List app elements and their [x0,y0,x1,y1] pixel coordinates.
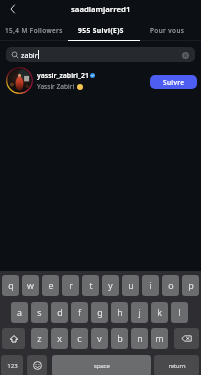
button[interactable]: return [154,355,199,375]
button[interactable]: k [151,302,168,323]
staticText: m [155,332,164,345]
button[interactable]: h [111,302,128,323]
staticText: o [168,279,174,292]
button[interactable]: y [102,275,119,296]
staticText: Yassir Zabiri [37,82,75,91]
staticText: k [157,306,162,319]
staticText: h [117,306,123,319]
staticText: q [8,279,14,292]
staticText: f [78,306,81,319]
staticText: x [57,332,62,345]
staticText: t [89,279,93,292]
staticText: d [57,306,63,319]
staticText: 15,4 M Followers [5,26,63,35]
staticText: space [94,362,110,370]
staticText: Suivre [163,78,185,87]
button[interactable]: Shift [2,328,25,349]
button[interactable]: yassir_zabiri_21 [0,66,201,95]
staticText: j [138,306,141,319]
staticText: w [27,279,34,292]
button[interactable]: Backspace [174,328,199,349]
staticText: l [178,306,181,319]
button[interactable]: b [111,328,128,349]
button[interactable]: d [51,302,68,323]
button[interactable]: i [142,275,159,296]
button[interactable]: r [62,275,79,296]
button[interactable]: space [52,355,151,375]
button[interactable]: f [71,302,88,323]
button[interactable]: m [151,328,168,349]
button[interactable]: c [71,328,88,349]
staticText: zabir [21,50,38,60]
staticText: p [188,279,194,292]
staticText: z [37,332,42,345]
button[interactable]: l [171,302,188,323]
button[interactable]: Pour vous [134,21,201,40]
button[interactable]: 123 [1,355,23,375]
staticText: b [117,332,123,345]
button[interactable]: zabir [6,47,195,62]
staticText: i [149,279,152,292]
button[interactable]: n [131,328,148,349]
button[interactable]: Clear search [180,50,190,60]
button[interactable]: t [82,275,99,296]
button[interactable]: w [22,275,39,296]
button[interactable]: z [31,328,48,349]
button[interactable]: o [162,275,179,296]
staticText: c [77,332,82,345]
staticText: 123 [7,362,18,370]
button[interactable]: s [31,302,48,323]
button[interactable]: u [122,275,139,296]
button[interactable]: 955 Suivi(E)S [67,21,134,40]
staticText: y [108,279,113,292]
button[interactable]: Emoji [27,355,47,375]
button[interactable]: e [42,275,59,296]
button[interactable]: 15,4 M Followers [0,21,67,40]
staticText: g [97,306,103,319]
staticText: return [168,362,186,370]
button[interactable]: x [51,328,68,349]
button[interactable]: a [11,302,28,323]
staticText: a [17,306,22,319]
staticText: yassir_zabiri_21 [37,71,89,80]
staticText: v [97,332,102,345]
staticText: u [128,279,134,292]
staticText: r [69,279,73,292]
staticText: n [137,332,143,345]
button[interactable]: v [91,328,108,349]
staticText: e [48,279,54,292]
button[interactable]: p [182,275,199,296]
button[interactable]: q [2,275,19,296]
button[interactable]: g [91,302,108,323]
staticText: s [37,306,42,319]
button[interactable]: j [131,302,148,323]
staticText: Pour vous [150,26,185,35]
staticText: saadlamjarred1 [71,4,131,15]
button[interactable]: Back [0,0,26,18]
button[interactable]: Suivre [150,75,197,89]
staticText: 955 Suivi(E)S [78,26,124,35]
